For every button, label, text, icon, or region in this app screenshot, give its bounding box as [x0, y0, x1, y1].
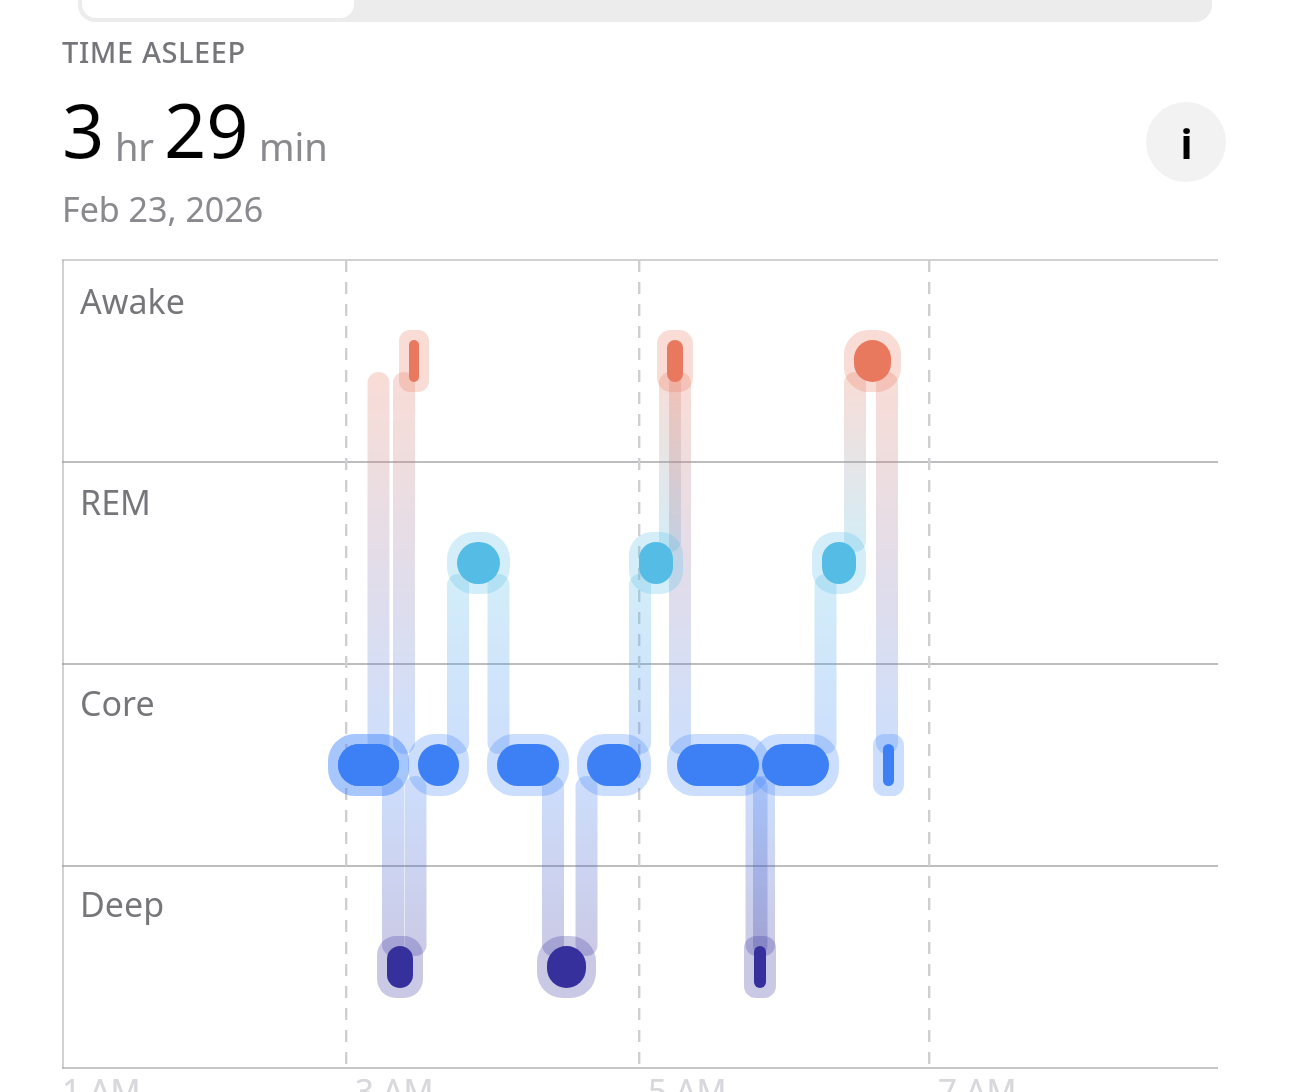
- staticText: 3: [62, 79, 105, 180]
- button[interactable]: [78, 0, 1212, 22]
- staticText: 3 AM: [355, 1068, 434, 1092]
- staticText: Feb 23, 2026: [62, 186, 264, 232]
- staticText: TIME ASLEEP: [62, 32, 246, 71]
- staticText: REM: [80, 479, 151, 525]
- staticText: Deep: [80, 881, 165, 927]
- staticText: 1 AM: [62, 1068, 141, 1092]
- staticText: i: [1180, 114, 1193, 171]
- staticText: min: [249, 120, 328, 172]
- button[interactable]: Information about sleep stages: [1146, 102, 1226, 182]
- staticText: 5 AM: [648, 1068, 727, 1092]
- staticText: hr: [105, 120, 164, 172]
- staticText: Core: [80, 680, 155, 726]
- staticText: 29: [164, 79, 249, 180]
- staticText: 7 AM: [938, 1068, 1017, 1092]
- staticText: Awake: [80, 278, 185, 324]
